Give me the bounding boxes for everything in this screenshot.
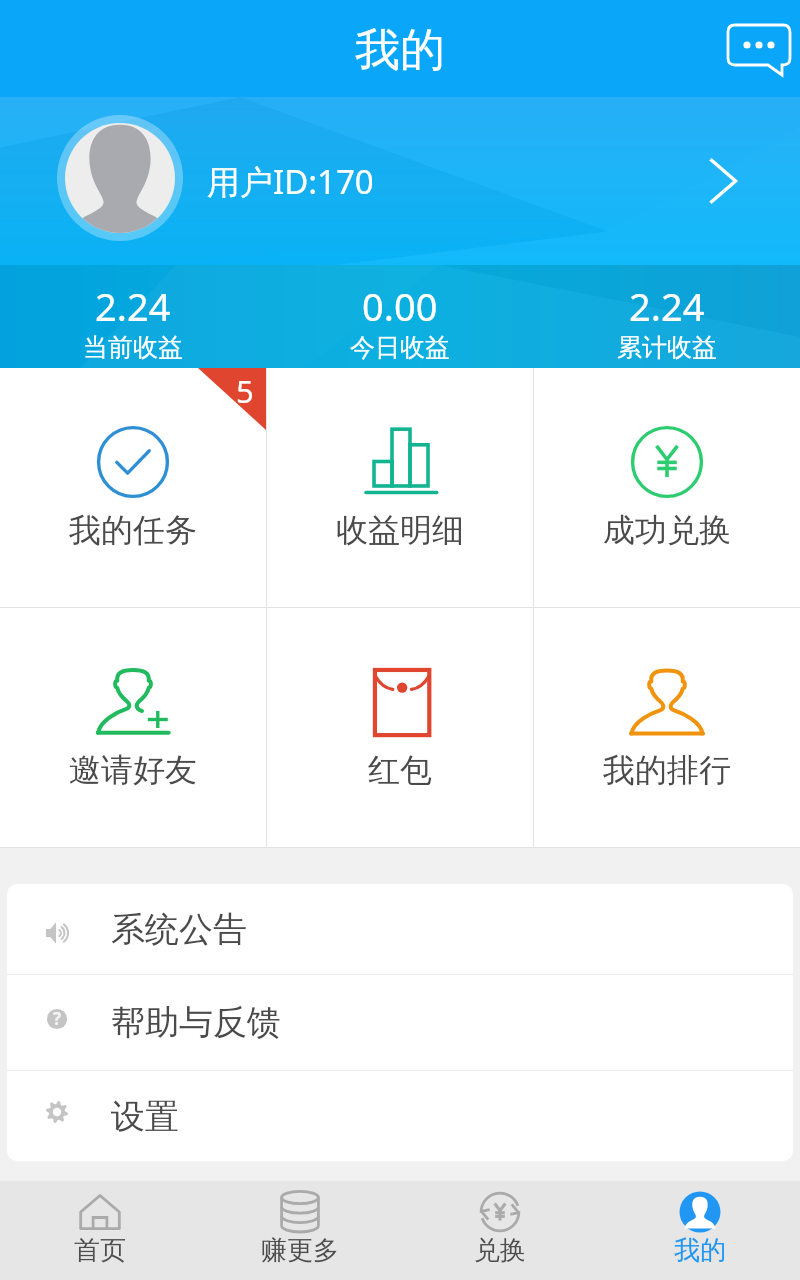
staticText: 成功兑换 bbox=[603, 510, 731, 550]
staticText: 我的排行 bbox=[603, 750, 731, 790]
staticText: ? bbox=[53, 1007, 62, 1030]
button[interactable]: 成功兑换 bbox=[534, 368, 800, 607]
button[interactable]: 收益明细 bbox=[267, 368, 533, 607]
staticText: 0.00 bbox=[362, 280, 438, 332]
button[interactable]: 2.24 bbox=[0, 270, 266, 373]
staticText: 5 bbox=[236, 370, 254, 412]
button[interactable]: 用户ID:170 bbox=[0, 97, 800, 265]
button[interactable]: 兑换 bbox=[400, 1181, 600, 1280]
staticText: 用户ID:170 bbox=[207, 159, 374, 204]
staticText: 收益明细 bbox=[336, 510, 464, 550]
staticText: 2.24 bbox=[629, 280, 705, 332]
button[interactable]: 邀请好友 bbox=[0, 608, 266, 847]
staticText: 帮助与反馈 bbox=[111, 1001, 281, 1044]
staticText: 兑换 bbox=[474, 1234, 526, 1267]
staticText: 赚更多 bbox=[261, 1234, 339, 1267]
button[interactable]: 首页 bbox=[0, 1181, 200, 1280]
staticText: 邀请好友 bbox=[69, 750, 197, 790]
staticText: 我的任务 bbox=[69, 510, 197, 550]
staticText: 2.24 bbox=[95, 280, 171, 332]
button[interactable]: Messages bbox=[710, 11, 794, 87]
button[interactable]: 赚更多 bbox=[200, 1181, 400, 1280]
staticText: 红包 bbox=[368, 750, 432, 790]
button[interactable]: 我的排行 bbox=[534, 608, 800, 847]
staticText: 我的 bbox=[674, 1234, 726, 1267]
staticText: 当前收益 bbox=[83, 332, 183, 363]
staticText: 我的 bbox=[355, 22, 445, 79]
staticText: 今日收益 bbox=[350, 332, 450, 363]
staticText: 首页 bbox=[74, 1234, 126, 1267]
button[interactable]: 设置 bbox=[7, 1071, 793, 1161]
staticText: 累计收益 bbox=[617, 332, 717, 363]
button[interactable]: 我的任务 bbox=[0, 368, 266, 607]
button[interactable]: 红包 bbox=[267, 608, 533, 847]
staticText: 系统公告 bbox=[111, 908, 247, 951]
button[interactable]: ? bbox=[7, 975, 793, 1070]
button[interactable]: 2.24 bbox=[533, 270, 800, 373]
button[interactable]: 0.00 bbox=[266, 270, 533, 373]
staticText: 设置 bbox=[111, 1095, 179, 1138]
button[interactable]: 系统公告 bbox=[7, 884, 793, 974]
button[interactable]: 我的 bbox=[600, 1181, 800, 1280]
